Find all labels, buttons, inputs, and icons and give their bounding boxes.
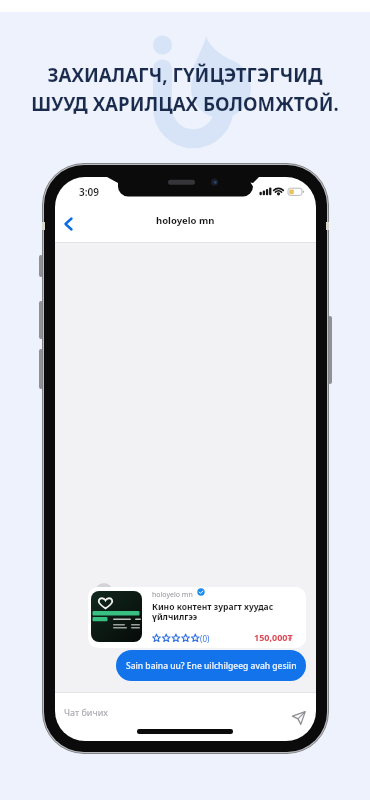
staticText: 150,000₮ bbox=[254, 631, 293, 643]
button[interactable]: Чат бичих bbox=[55, 693, 283, 725]
staticText: (0) bbox=[200, 633, 210, 644]
button[interactable] bbox=[58, 213, 82, 237]
staticText: Чат бичих bbox=[64, 706, 108, 718]
staticText: 3:09 bbox=[79, 185, 99, 199]
staticText: holoyelo mn bbox=[156, 214, 215, 227]
button[interactable]: holoyelo mn bbox=[88, 587, 306, 648]
button[interactable]: Sain baina uu? Ene uilchilgeeg avah gesi… bbox=[116, 650, 306, 681]
button[interactable] bbox=[287, 706, 311, 730]
staticText: ЗАХИАЛАГЧ, ГҮЙЦЭТГЭГЧИД ШУУД ХАРИЛЦАХ БО… bbox=[31, 62, 339, 116]
staticText: Кино контент зурагт хуудас үйлчилгээ bbox=[152, 601, 274, 623]
staticText: holoyelo mn bbox=[152, 590, 193, 600]
staticText: Sain baina uu? Ene uilchilgeeg avah gesi… bbox=[126, 660, 297, 672]
